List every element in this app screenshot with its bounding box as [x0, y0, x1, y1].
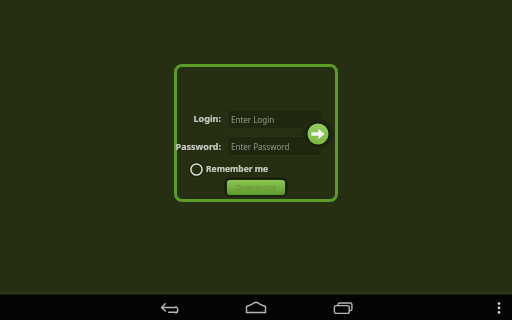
staticText: Enter Login — [231, 114, 275, 125]
button[interactable]: More options — [486, 295, 512, 320]
button[interactable]: Enter Login — [227, 109, 322, 129]
staticText: Login: — [161, 112, 221, 124]
button[interactable]: Order Access — [224, 177, 288, 197]
button[interactable]: Submit — [302, 118, 334, 150]
button[interactable]: Remember me — [189, 161, 269, 177]
staticText: Order Access — [236, 183, 276, 192]
staticText: Enter Password — [231, 141, 290, 152]
button[interactable]: Enter Password — [227, 136, 322, 156]
button[interactable]: Back — [146, 295, 194, 320]
button[interactable]: Recent apps — [320, 295, 368, 320]
staticText: Password: — [161, 140, 221, 152]
staticText: Remember me — [206, 163, 269, 175]
button[interactable]: Home — [232, 294, 280, 319]
